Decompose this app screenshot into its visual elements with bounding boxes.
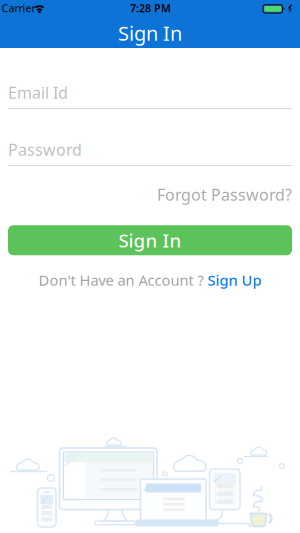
button[interactable]: Sign In bbox=[8, 225, 292, 255]
staticText: Password bbox=[8, 139, 82, 160]
button[interactable]: Email Id bbox=[8, 77, 292, 109]
staticText: Forgot Password? bbox=[157, 184, 292, 205]
staticText: 7:28 PM bbox=[130, 1, 171, 15]
staticText: Sign In bbox=[118, 20, 182, 46]
staticText: Sign Up bbox=[207, 270, 261, 290]
staticText: Carrier bbox=[1, 1, 35, 15]
button[interactable]: Forgot Password? bbox=[157, 184, 292, 205]
staticText: Don't Have an Account ? bbox=[38, 270, 203, 290]
button[interactable]: Password bbox=[8, 134, 292, 166]
button[interactable]: Sign Up bbox=[207, 270, 261, 290]
staticText: Sign In bbox=[118, 228, 181, 253]
staticText: Email Id bbox=[8, 82, 68, 103]
